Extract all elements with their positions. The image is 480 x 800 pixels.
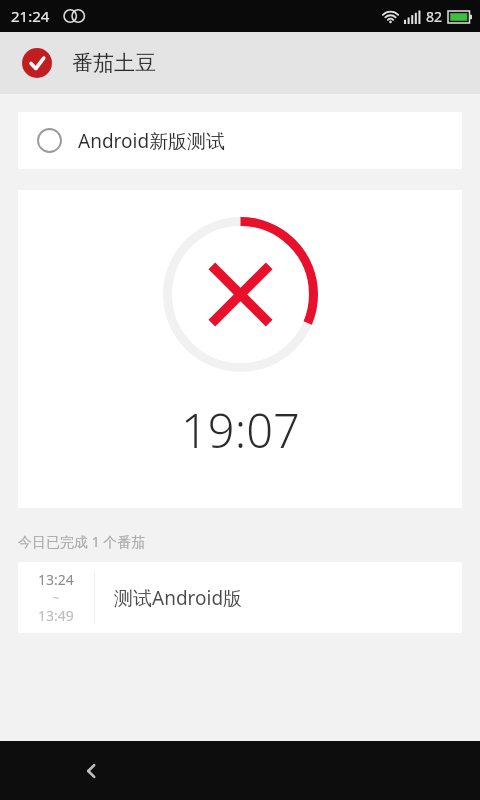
staticText: 19:07 bbox=[181, 398, 300, 462]
button[interactable]: Stop timer bbox=[18, 190, 462, 508]
staticText: ~ bbox=[53, 590, 60, 605]
staticText: 测试Android版 bbox=[114, 585, 243, 611]
button[interactable]: Android新版测试 bbox=[18, 112, 462, 169]
staticText: Android新版测试 bbox=[78, 128, 226, 154]
button[interactable]: 13:24 bbox=[18, 562, 462, 633]
staticText: 13:24 bbox=[38, 570, 74, 589]
staticText: 今日已完成 1 个番茄 bbox=[18, 532, 146, 551]
staticText: 21:24 bbox=[11, 6, 50, 26]
staticText: 82 bbox=[426, 7, 443, 26]
button[interactable]: Back bbox=[62, 741, 122, 800]
staticText: 番茄土豆 bbox=[72, 50, 156, 76]
button[interactable]: Stop timer bbox=[163, 217, 318, 372]
staticText: 13:49 bbox=[38, 606, 74, 625]
